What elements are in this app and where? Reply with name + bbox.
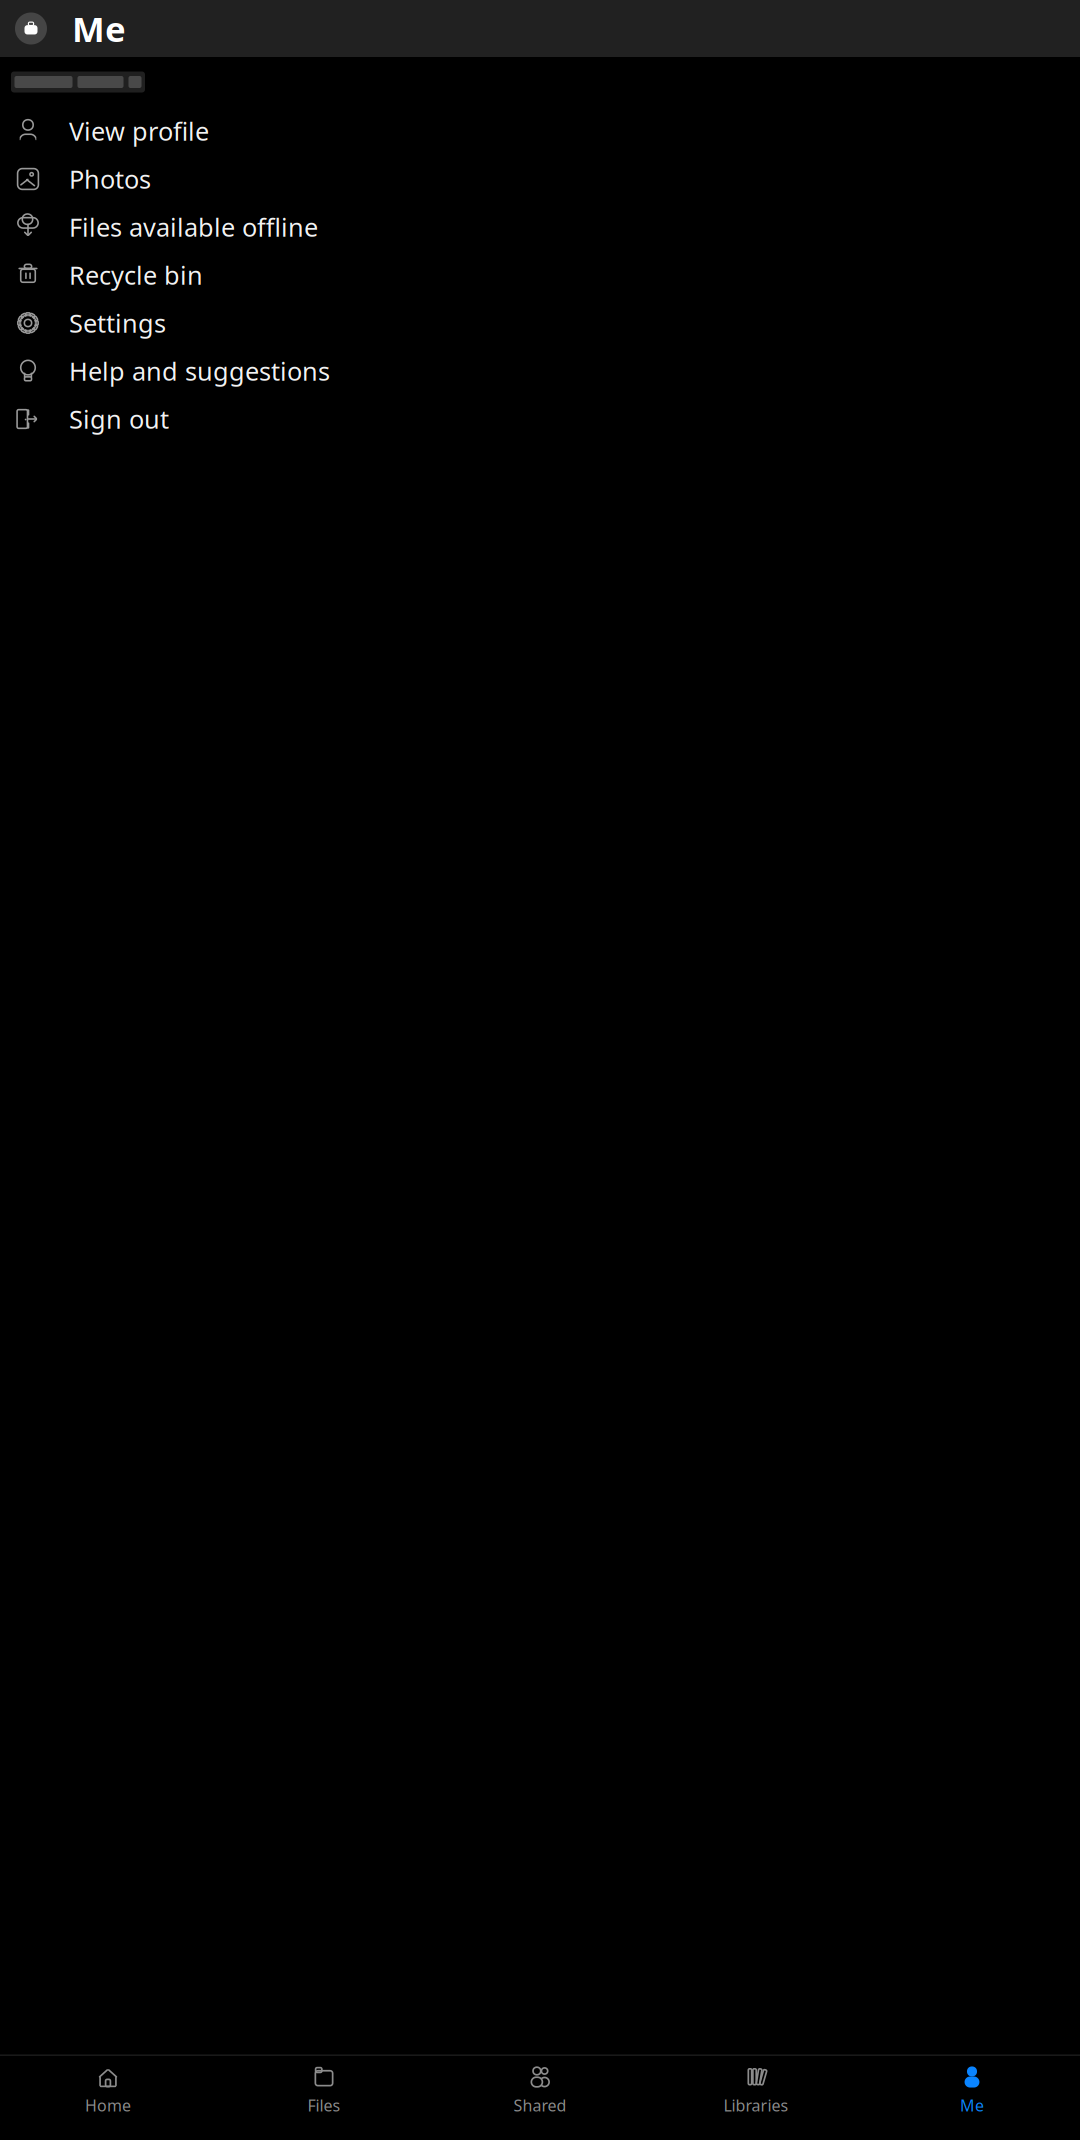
staticText: Me — [960, 2095, 984, 2116]
staticText: Sign out — [69, 402, 169, 436]
button[interactable]: Home — [0, 2056, 216, 2122]
button[interactable]: Settings — [0, 299, 1080, 347]
button[interactable]: Work account — [9, 6, 53, 50]
staticText: Shared — [513, 2095, 566, 2116]
staticText: Files — [307, 2095, 340, 2116]
button[interactable]: Libraries — [648, 2056, 864, 2122]
staticText: View profile — [69, 114, 209, 148]
button[interactable]: Help and suggestions — [0, 347, 1080, 395]
staticText: Libraries — [723, 2095, 788, 2116]
staticText: Settings — [69, 306, 166, 340]
button[interactable]: Files — [216, 2056, 432, 2122]
button[interactable]: View profile — [0, 107, 1080, 155]
button[interactable]: Files available offline — [0, 203, 1080, 251]
button[interactable]: Recycle bin — [0, 251, 1080, 299]
staticText: Recycle bin — [69, 258, 203, 292]
staticText: Help and suggestions — [69, 354, 330, 388]
button[interactable]: Photos — [0, 155, 1080, 203]
button[interactable]: Sign out — [0, 395, 1080, 443]
staticText: Photos — [69, 162, 151, 196]
staticText: Me — [72, 5, 126, 51]
button[interactable]: Shared — [432, 2056, 648, 2122]
button[interactable]: Me — [864, 2056, 1080, 2122]
staticText: Files available offline — [69, 210, 318, 244]
staticText: Home — [85, 2095, 131, 2116]
